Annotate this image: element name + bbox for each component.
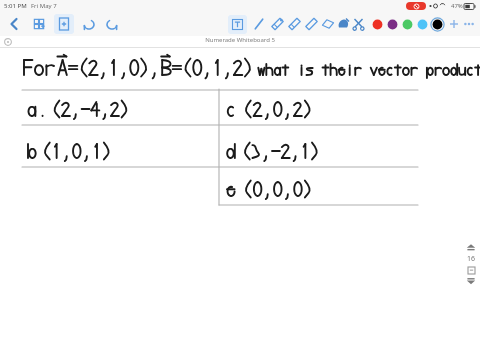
button[interactable]: Add page bbox=[54, 14, 74, 34]
button[interactable]: Color 1 bbox=[370, 17, 385, 32]
button[interactable]: Eraser bbox=[320, 14, 336, 34]
button[interactable]: Color 3 bbox=[400, 17, 415, 32]
button[interactable]: More options bbox=[461, 13, 477, 35]
button[interactable]: Redo bbox=[103, 13, 121, 35]
button[interactable]: Color 2 bbox=[385, 17, 400, 32]
staticText: Fri May 7 bbox=[31, 2, 57, 10]
button[interactable]: Highlighter bbox=[286, 14, 303, 34]
staticText: Numerade Whiteboard 5 bbox=[0, 36, 480, 44]
button[interactable]: Pencil bbox=[303, 14, 320, 34]
button[interactable]: Cut bbox=[351, 14, 366, 34]
button[interactable]: Recording bbox=[406, 2, 426, 10]
button[interactable]: Next page bbox=[465, 277, 477, 286]
button[interactable]: Page thumbnail bbox=[468, 267, 475, 274]
button[interactable]: Text tool bbox=[228, 15, 247, 34]
button[interactable]: Add colour bbox=[447, 13, 461, 35]
button[interactable]: Undo bbox=[80, 13, 98, 35]
staticText: 47% bbox=[451, 2, 463, 10]
button[interactable]: Pages bbox=[30, 13, 48, 35]
button[interactable]: Select bbox=[336, 14, 351, 34]
button[interactable]: Previous page bbox=[465, 242, 477, 251]
staticText: 5:01 PM bbox=[4, 2, 27, 10]
button[interactable]: Color 5 bbox=[430, 17, 445, 32]
staticText: 16 bbox=[467, 254, 476, 264]
button[interactable]: Color 4 bbox=[415, 17, 430, 32]
button[interactable]: Line bbox=[251, 13, 267, 35]
button[interactable]: Pen bbox=[269, 14, 286, 34]
button[interactable]: Back bbox=[6, 13, 22, 35]
